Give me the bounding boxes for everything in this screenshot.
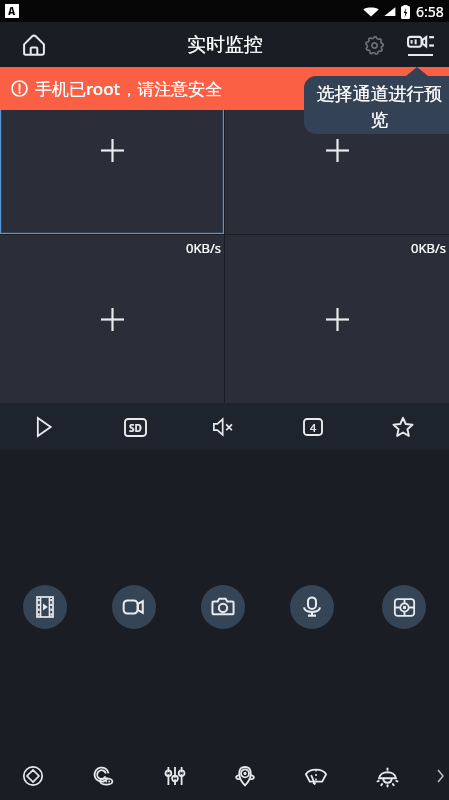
- button[interactable]: Location: [221, 752, 269, 800]
- button[interactable]: Snapshot: [201, 585, 245, 629]
- button[interactable]: Record: [112, 585, 156, 629]
- staticText: 手机已root，请注意安全: [35, 77, 223, 100]
- button[interactable]: Favorite: [380, 404, 426, 450]
- button[interactable]: Split view 4: [290, 404, 336, 450]
- button[interactable]: [0, 67, 224, 234]
- button[interactable]: Play: [21, 404, 67, 450]
- button[interactable]: Channels: [401, 26, 439, 64]
- button[interactable]: 手机已root，请注意安全: [11, 67, 449, 110]
- staticText: A: [8, 4, 16, 18]
- staticText: 0KB/s: [186, 239, 221, 257]
- staticText: 实时监控: [187, 33, 263, 57]
- button[interactable]: Tip: [304, 67, 449, 134]
- button[interactable]: Mute: [201, 404, 247, 450]
- button[interactable]: Radar: [79, 752, 127, 800]
- button[interactable]: 0KB/s: [225, 235, 449, 403]
- staticText: 选择通道进行预览: [314, 83, 445, 131]
- button[interactable]: Playback: [23, 585, 67, 629]
- button[interactable]: Wiper: [292, 752, 340, 800]
- button[interactable]: 0KB/s: [0, 235, 224, 403]
- button[interactable]: [225, 67, 449, 234]
- staticText: 6:58: [416, 2, 444, 21]
- button[interactable]: Settings: [357, 28, 391, 62]
- button[interactable]: PTZ control: [382, 585, 426, 629]
- button[interactable]: Quality SD: [112, 404, 158, 450]
- button[interactable]: Home: [15, 26, 53, 64]
- staticText: 4: [310, 420, 317, 435]
- button[interactable]: Talk: [290, 585, 334, 629]
- button[interactable]: Adjust: [151, 752, 199, 800]
- button[interactable]: Direction: [9, 752, 57, 800]
- staticText: 0KB/s: [411, 239, 446, 257]
- button[interactable]: Light: [363, 752, 411, 800]
- staticText: SD: [129, 421, 142, 435]
